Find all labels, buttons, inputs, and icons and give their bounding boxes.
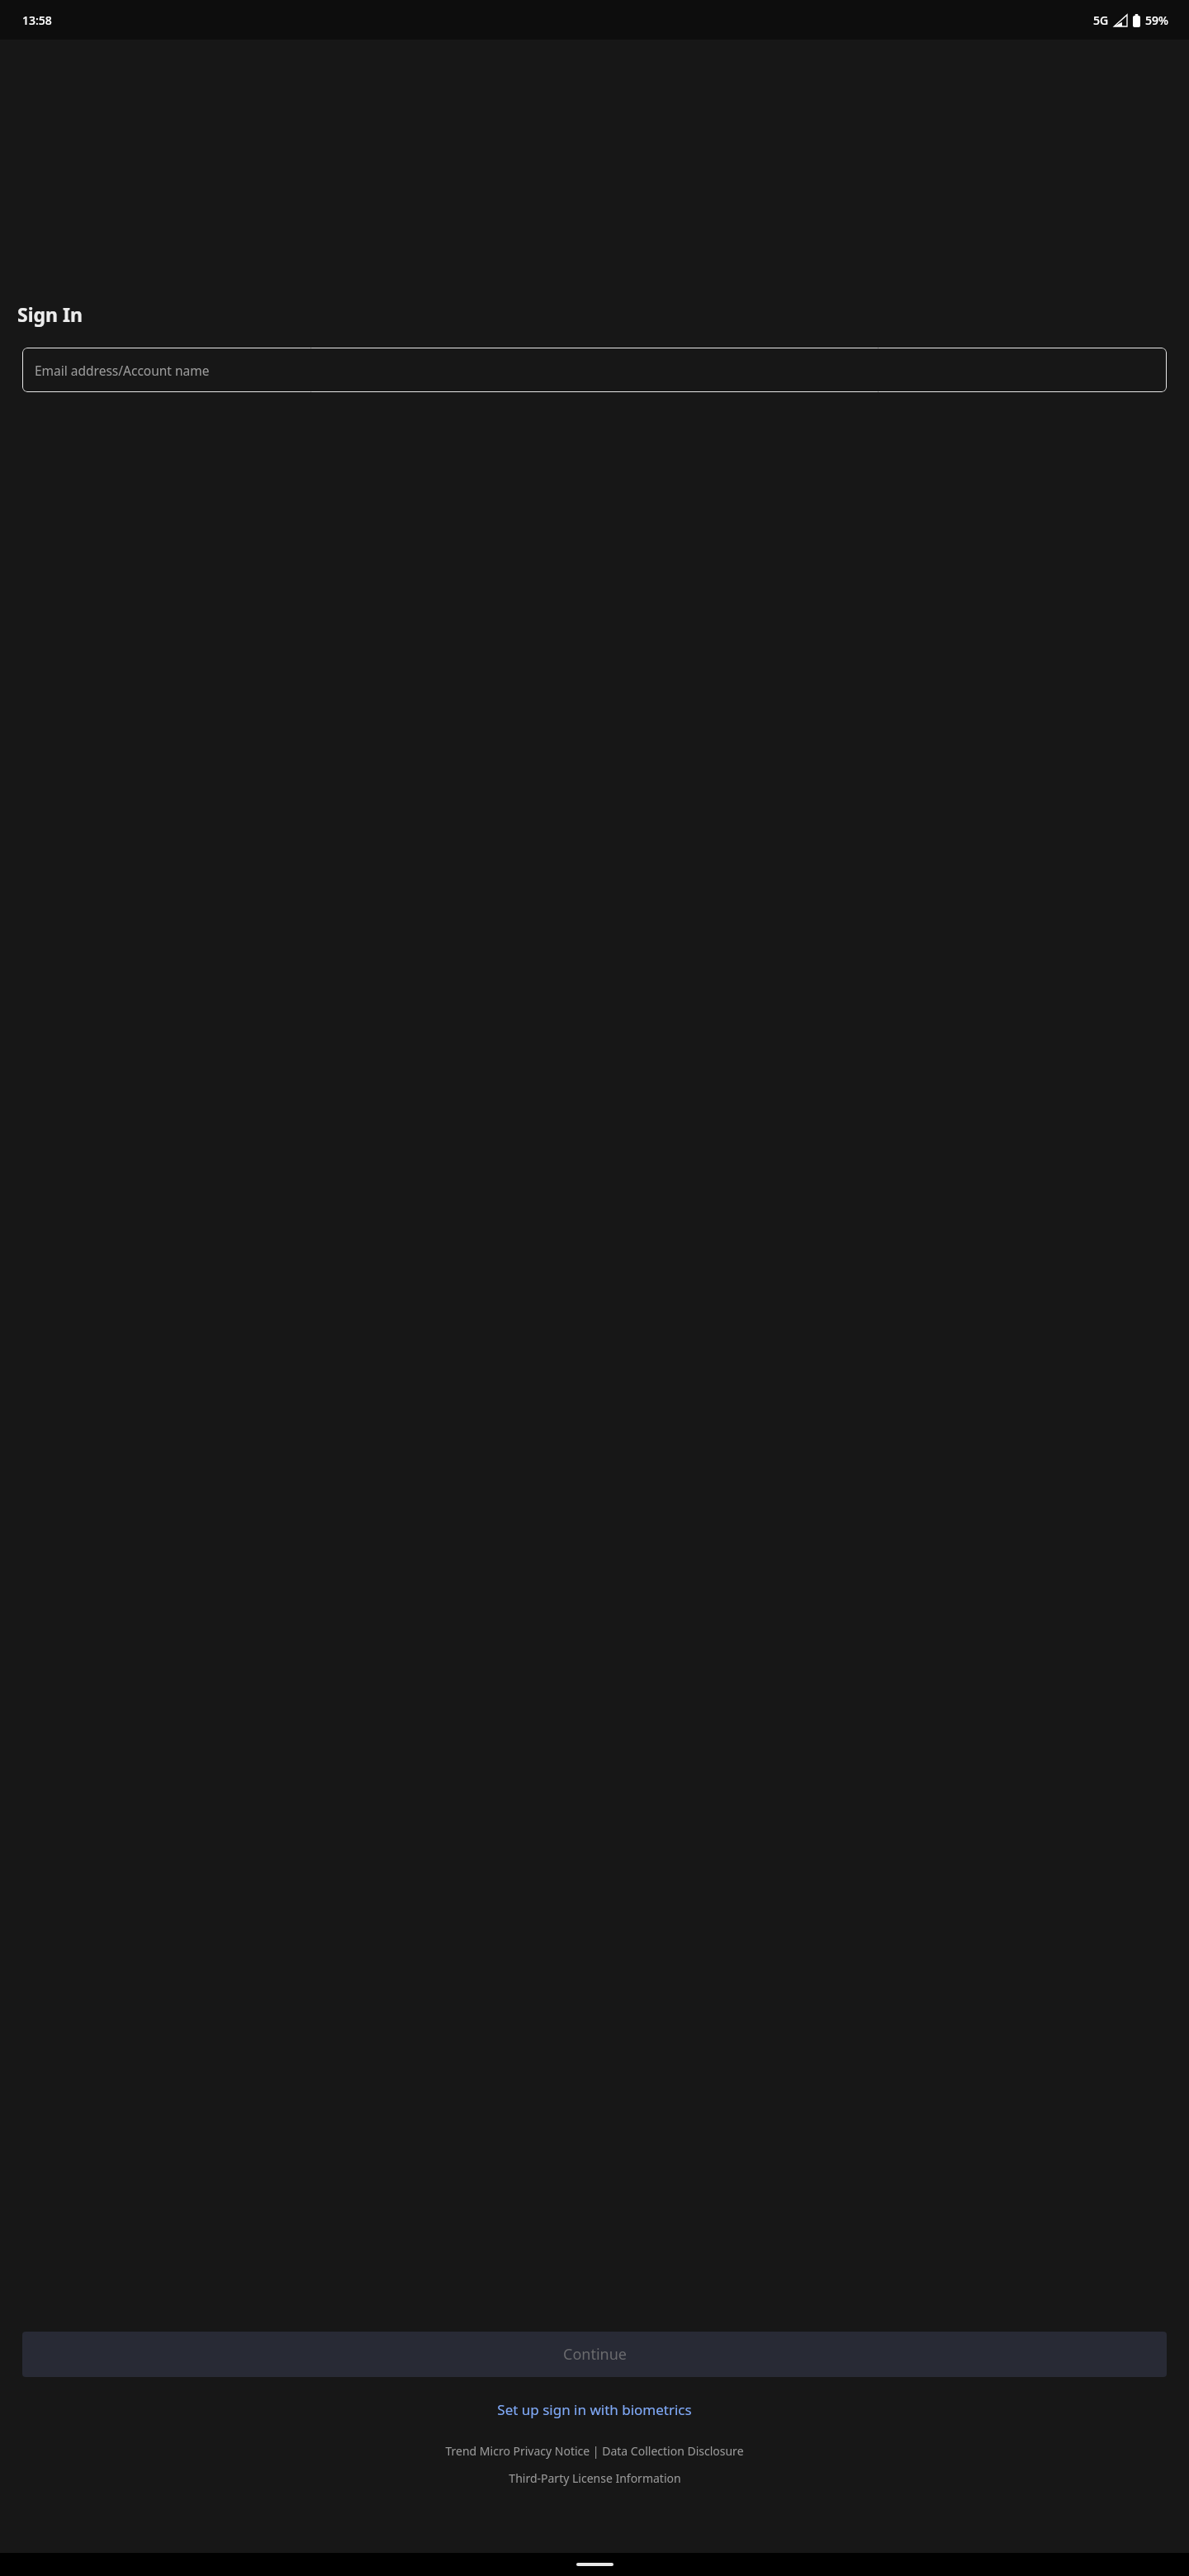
staticText: 13:58 (22, 12, 52, 28)
staticText: Trend Micro Privacy Notice | Data Collec… (445, 2443, 744, 2459)
staticText: Sign In (17, 301, 83, 327)
staticText: 5G (1093, 12, 1109, 28)
button[interactable]: Set up sign in with biometrics (0, 2395, 1189, 2424)
button[interactable]: Third-Party License Information (502, 2468, 688, 2488)
staticText: Third-Party License Information (509, 2470, 681, 2486)
staticText: 59% (1145, 12, 1168, 28)
button[interactable]: Continue (22, 2332, 1167, 2377)
other: Home gesture bar (576, 2563, 613, 2566)
other: Cellular signal (1114, 14, 1127, 26)
staticText: Set up sign in with biometrics (497, 2400, 692, 2419)
other: Battery 59 percent (1133, 14, 1140, 27)
staticText: Continue (563, 2344, 627, 2365)
button[interactable]: Email address/Account name (22, 348, 1167, 392)
button[interactable]: Trend Micro Privacy Notice | Data Collec… (438, 2441, 751, 2461)
staticText: Email address/Account name (35, 362, 210, 379)
